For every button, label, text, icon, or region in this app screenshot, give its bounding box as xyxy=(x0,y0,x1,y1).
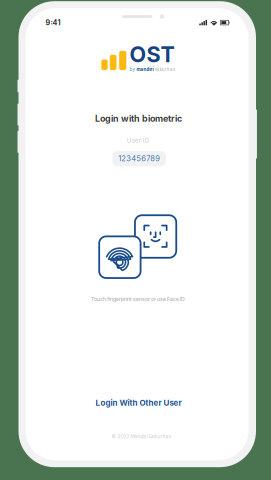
staticText: 9:41 xyxy=(46,18,61,27)
staticText: sekuritas xyxy=(155,67,175,72)
staticText: 123456789 xyxy=(118,154,160,163)
staticText: by xyxy=(129,67,135,72)
staticText: Login with biometric xyxy=(95,113,182,124)
button[interactable]: Login With Other User xyxy=(78,395,198,411)
staticText: Touch fingerprint sensor or use Face ID xyxy=(91,296,185,302)
staticText: © 2022 Mandiri Sekuritas xyxy=(111,433,171,439)
staticText: Login With Other User xyxy=(95,398,181,408)
staticText: OST xyxy=(130,41,175,67)
staticText: mandiri xyxy=(137,67,154,72)
staticText: User ID xyxy=(127,137,149,144)
